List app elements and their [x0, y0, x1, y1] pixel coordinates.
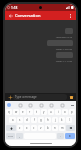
button[interactable]: Keyboard tool 1 — [18, 103, 22, 107]
button[interactable]: Type a message — [13, 94, 67, 100]
staticText: m — [61, 126, 64, 130]
button[interactable]: g — [38, 117, 44, 123]
button[interactable]: x — [24, 125, 30, 131]
staticText: Yesterday 9:42 — [55, 35, 72, 38]
button[interactable]: p — [69, 109, 75, 115]
staticText: u — [50, 110, 52, 114]
staticText: Today 1:17 PM — [55, 59, 72, 62]
button[interactable]: c — [31, 125, 37, 131]
button[interactable]: o — [62, 109, 68, 115]
staticText: q — [8, 110, 10, 114]
button[interactable]: Keyboard tool 4 — [49, 103, 53, 107]
staticText: z — [19, 126, 21, 130]
button[interactable]: h — [45, 117, 51, 123]
button[interactable]: Back — [7, 12, 14, 19]
button[interactable]: s — [17, 117, 23, 123]
button[interactable]: Send message — [65, 133, 75, 139]
staticText: Conversation — [15, 13, 41, 18]
button[interactable]: k — [59, 117, 65, 123]
button[interactable]: n — [52, 125, 58, 131]
staticText: a — [12, 118, 14, 122]
button[interactable] — [65, 28, 73, 34]
staticText: ?123 — [8, 135, 13, 138]
button[interactable]: Comma — [16, 133, 23, 139]
staticText: i — [58, 110, 59, 114]
button[interactable]: j — [52, 117, 58, 123]
button[interactable]: u — [48, 109, 54, 115]
button[interactable]: l — [66, 117, 72, 123]
staticText: g — [40, 118, 42, 122]
staticText: h — [47, 118, 49, 122]
staticText: . — [60, 134, 61, 138]
button[interactable]: Backspace — [66, 125, 75, 131]
staticText: Today 1:05 PM — [55, 47, 72, 50]
staticText: r — [29, 110, 31, 114]
button[interactable]: b — [45, 125, 51, 131]
button[interactable]: z — [17, 125, 23, 131]
button[interactable]: y — [41, 109, 47, 115]
button[interactable]: Google Assistant — [7, 103, 11, 107]
button[interactable]: w — [13, 109, 19, 115]
button[interactable]: Conversation — [15, 13, 67, 18]
button[interactable]: Keyboard tool 5 — [60, 103, 64, 107]
staticText: d — [26, 118, 28, 122]
button[interactable]: Send — [68, 94, 74, 100]
button[interactable]: a — [9, 117, 16, 123]
button[interactable]: Symbols — [6, 133, 15, 139]
staticText: , — [19, 134, 20, 138]
button[interactable]: More options — [67, 12, 74, 19]
staticText: t — [36, 110, 38, 114]
staticText: l — [69, 118, 70, 122]
button[interactable]: Period — [57, 133, 64, 139]
button[interactable]: Keyboard tool 3 — [39, 103, 43, 107]
staticText: Type a message — [15, 95, 37, 99]
staticText: k — [61, 118, 63, 122]
staticText: j — [55, 118, 56, 122]
button[interactable]: t — [34, 109, 40, 115]
button[interactable]: m — [59, 125, 65, 131]
button[interactable]: e — [20, 109, 26, 115]
staticText: n — [54, 126, 56, 130]
button[interactable]: q — [6, 109, 12, 115]
staticText: y — [43, 110, 45, 114]
staticText: b — [47, 126, 49, 130]
staticText: f — [34, 118, 35, 122]
staticText: p — [71, 110, 73, 114]
button[interactable]: r — [27, 109, 33, 115]
staticText: c — [33, 126, 35, 130]
button[interactable]: Shift — [6, 125, 16, 131]
button[interactable]: Add attachment — [7, 94, 13, 100]
button[interactable]: i — [55, 109, 61, 115]
staticText: 1:18 — [11, 6, 18, 10]
staticText: o — [64, 110, 66, 114]
button[interactable]: More — [70, 103, 74, 107]
button[interactable]: Keyboard tool 2 — [28, 103, 32, 107]
staticText: e — [22, 110, 24, 114]
staticText: s — [19, 118, 21, 122]
button[interactable]: d — [24, 117, 30, 123]
staticText: x — [26, 126, 28, 130]
button[interactable]: v — [38, 125, 44, 131]
button[interactable]: f — [31, 117, 37, 123]
staticText: w — [15, 110, 18, 114]
staticText: v — [40, 126, 42, 130]
